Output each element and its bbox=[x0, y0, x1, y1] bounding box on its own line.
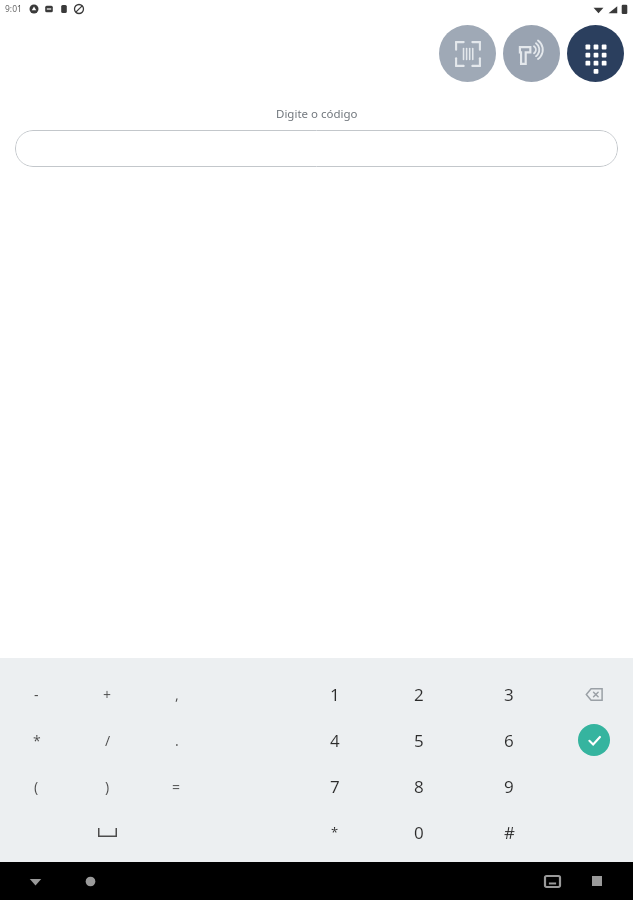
button[interactable]: , bbox=[142, 671, 211, 717]
staticText: 4 bbox=[330, 729, 340, 752]
staticText: 7 bbox=[330, 775, 340, 798]
button[interactable]: Switch keyboard bbox=[539, 868, 565, 894]
button[interactable]: Code input field bbox=[15, 130, 618, 167]
button[interactable]: - bbox=[0, 671, 73, 717]
staticText: 1 bbox=[330, 683, 340, 706]
staticText: ( bbox=[34, 777, 39, 796]
staticText: 9 bbox=[504, 775, 514, 798]
button[interactable]: Hide keyboard bbox=[22, 868, 48, 894]
button[interactable]: = bbox=[142, 763, 211, 809]
staticText: 8 bbox=[414, 775, 424, 798]
button[interactable]: 2 bbox=[374, 671, 464, 717]
staticText: . bbox=[175, 731, 179, 750]
staticText: - bbox=[34, 685, 39, 704]
staticText: ) bbox=[105, 777, 110, 796]
staticText: 9:01 bbox=[5, 3, 22, 15]
button[interactable] bbox=[73, 809, 142, 855]
staticText: * bbox=[33, 731, 41, 750]
staticText: + bbox=[103, 685, 112, 704]
button[interactable]: Home bbox=[77, 868, 103, 894]
button[interactable]: ) bbox=[73, 763, 142, 809]
button[interactable]: # bbox=[464, 809, 554, 855]
button[interactable]: 7 bbox=[296, 763, 374, 809]
button[interactable]: RFID scanner bbox=[503, 25, 560, 82]
staticText: # bbox=[504, 821, 515, 844]
button[interactable]: 6 bbox=[464, 717, 554, 763]
button[interactable]: 9 bbox=[464, 763, 554, 809]
staticText: / bbox=[105, 731, 111, 750]
button[interactable]: Scan barcode bbox=[439, 25, 496, 82]
staticText: 2 bbox=[414, 683, 424, 706]
staticText: Digite o código bbox=[276, 106, 358, 122]
staticText: 0 bbox=[414, 821, 424, 844]
button[interactable]: 0 bbox=[374, 809, 464, 855]
button[interactable]: . bbox=[142, 717, 211, 763]
staticText: 6 bbox=[504, 729, 514, 752]
staticText: , bbox=[175, 685, 179, 704]
button[interactable]: + bbox=[73, 671, 142, 717]
staticText: * bbox=[331, 823, 339, 841]
button[interactable]: 8 bbox=[374, 763, 464, 809]
button[interactable]: 3 bbox=[464, 671, 554, 717]
button[interactable]: Backspace bbox=[576, 676, 612, 712]
button[interactable]: Confirm bbox=[578, 724, 610, 756]
button[interactable]: / bbox=[73, 717, 142, 763]
button[interactable]: Keypad bbox=[567, 25, 624, 82]
button[interactable]: 5 bbox=[374, 717, 464, 763]
button[interactable]: ( bbox=[0, 763, 73, 809]
staticText: 5 bbox=[414, 729, 424, 752]
staticText: = bbox=[172, 777, 181, 796]
button[interactable]: * bbox=[296, 809, 374, 855]
button[interactable]: * bbox=[0, 717, 73, 763]
staticText: 3 bbox=[504, 683, 514, 706]
button[interactable]: 4 bbox=[296, 717, 374, 763]
button[interactable]: 1 bbox=[296, 671, 374, 717]
button[interactable]: Recents bbox=[584, 868, 610, 894]
